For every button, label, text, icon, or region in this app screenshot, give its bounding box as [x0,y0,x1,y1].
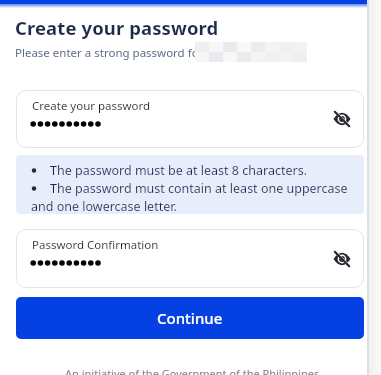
button[interactable] [330,107,354,131]
staticText: Create your password [15,15,219,40]
staticText: An initiative of the Government of the P… [65,366,320,375]
staticText: Password Confirmation [32,237,159,253]
staticText: Continue [157,308,223,328]
button[interactable]: Password Confirmation [16,229,364,288]
staticText: The password must contain at least one u… [50,180,348,197]
staticText: The password must be at least 8 characte… [50,162,307,179]
staticText: and one lowercase letter. [31,198,177,215]
staticText: Create your password [32,98,151,114]
button[interactable] [330,247,354,271]
staticText: Please enter a strong password for [15,45,204,61]
button[interactable]: Create your password [16,90,364,148]
button[interactable]: Continue [16,297,364,339]
